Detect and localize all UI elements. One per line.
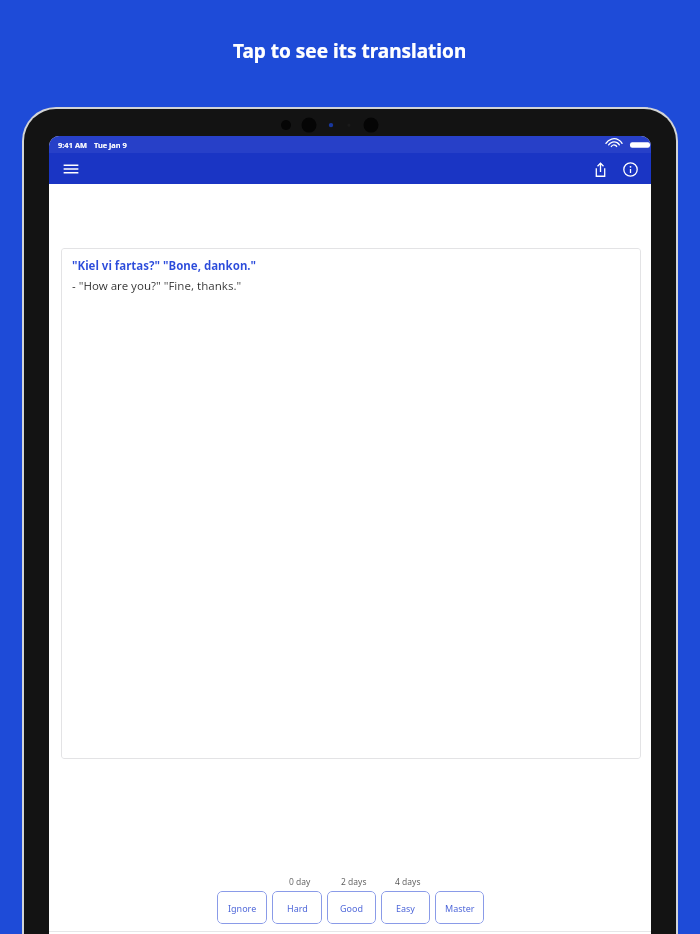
staticText: Easy — [396, 902, 415, 914]
staticText: 0 day — [289, 876, 311, 888]
staticText: - "How are you?" "Fine, thanks." — [72, 278, 242, 294]
staticText: Tap to see its translation — [233, 38, 467, 64]
button[interactable]: Good — [327, 891, 376, 924]
button[interactable]: Info — [617, 156, 643, 182]
button[interactable]: Master — [435, 891, 484, 924]
button[interactable]: Ignore — [217, 891, 267, 924]
staticText: 9:41 AM — [58, 140, 87, 150]
button[interactable]: Share — [587, 156, 613, 182]
staticText: Ignore — [228, 902, 257, 914]
button[interactable]: Easy — [381, 891, 430, 924]
staticText: Hard — [287, 902, 308, 914]
staticText: 4 days — [395, 876, 421, 888]
button[interactable]: Hard — [272, 891, 322, 924]
staticText: "Kiel vi fartas?" "Bone, dankon." — [72, 258, 257, 274]
button[interactable]: "Kiel vi fartas?" "Bone, dankon." — [61, 248, 641, 759]
staticText: Good — [340, 902, 363, 914]
staticText: 2 days — [341, 876, 367, 888]
staticText: Master — [445, 902, 475, 914]
button[interactable]: Menu — [57, 155, 85, 183]
staticText: Tue Jan 9 — [94, 140, 127, 150]
